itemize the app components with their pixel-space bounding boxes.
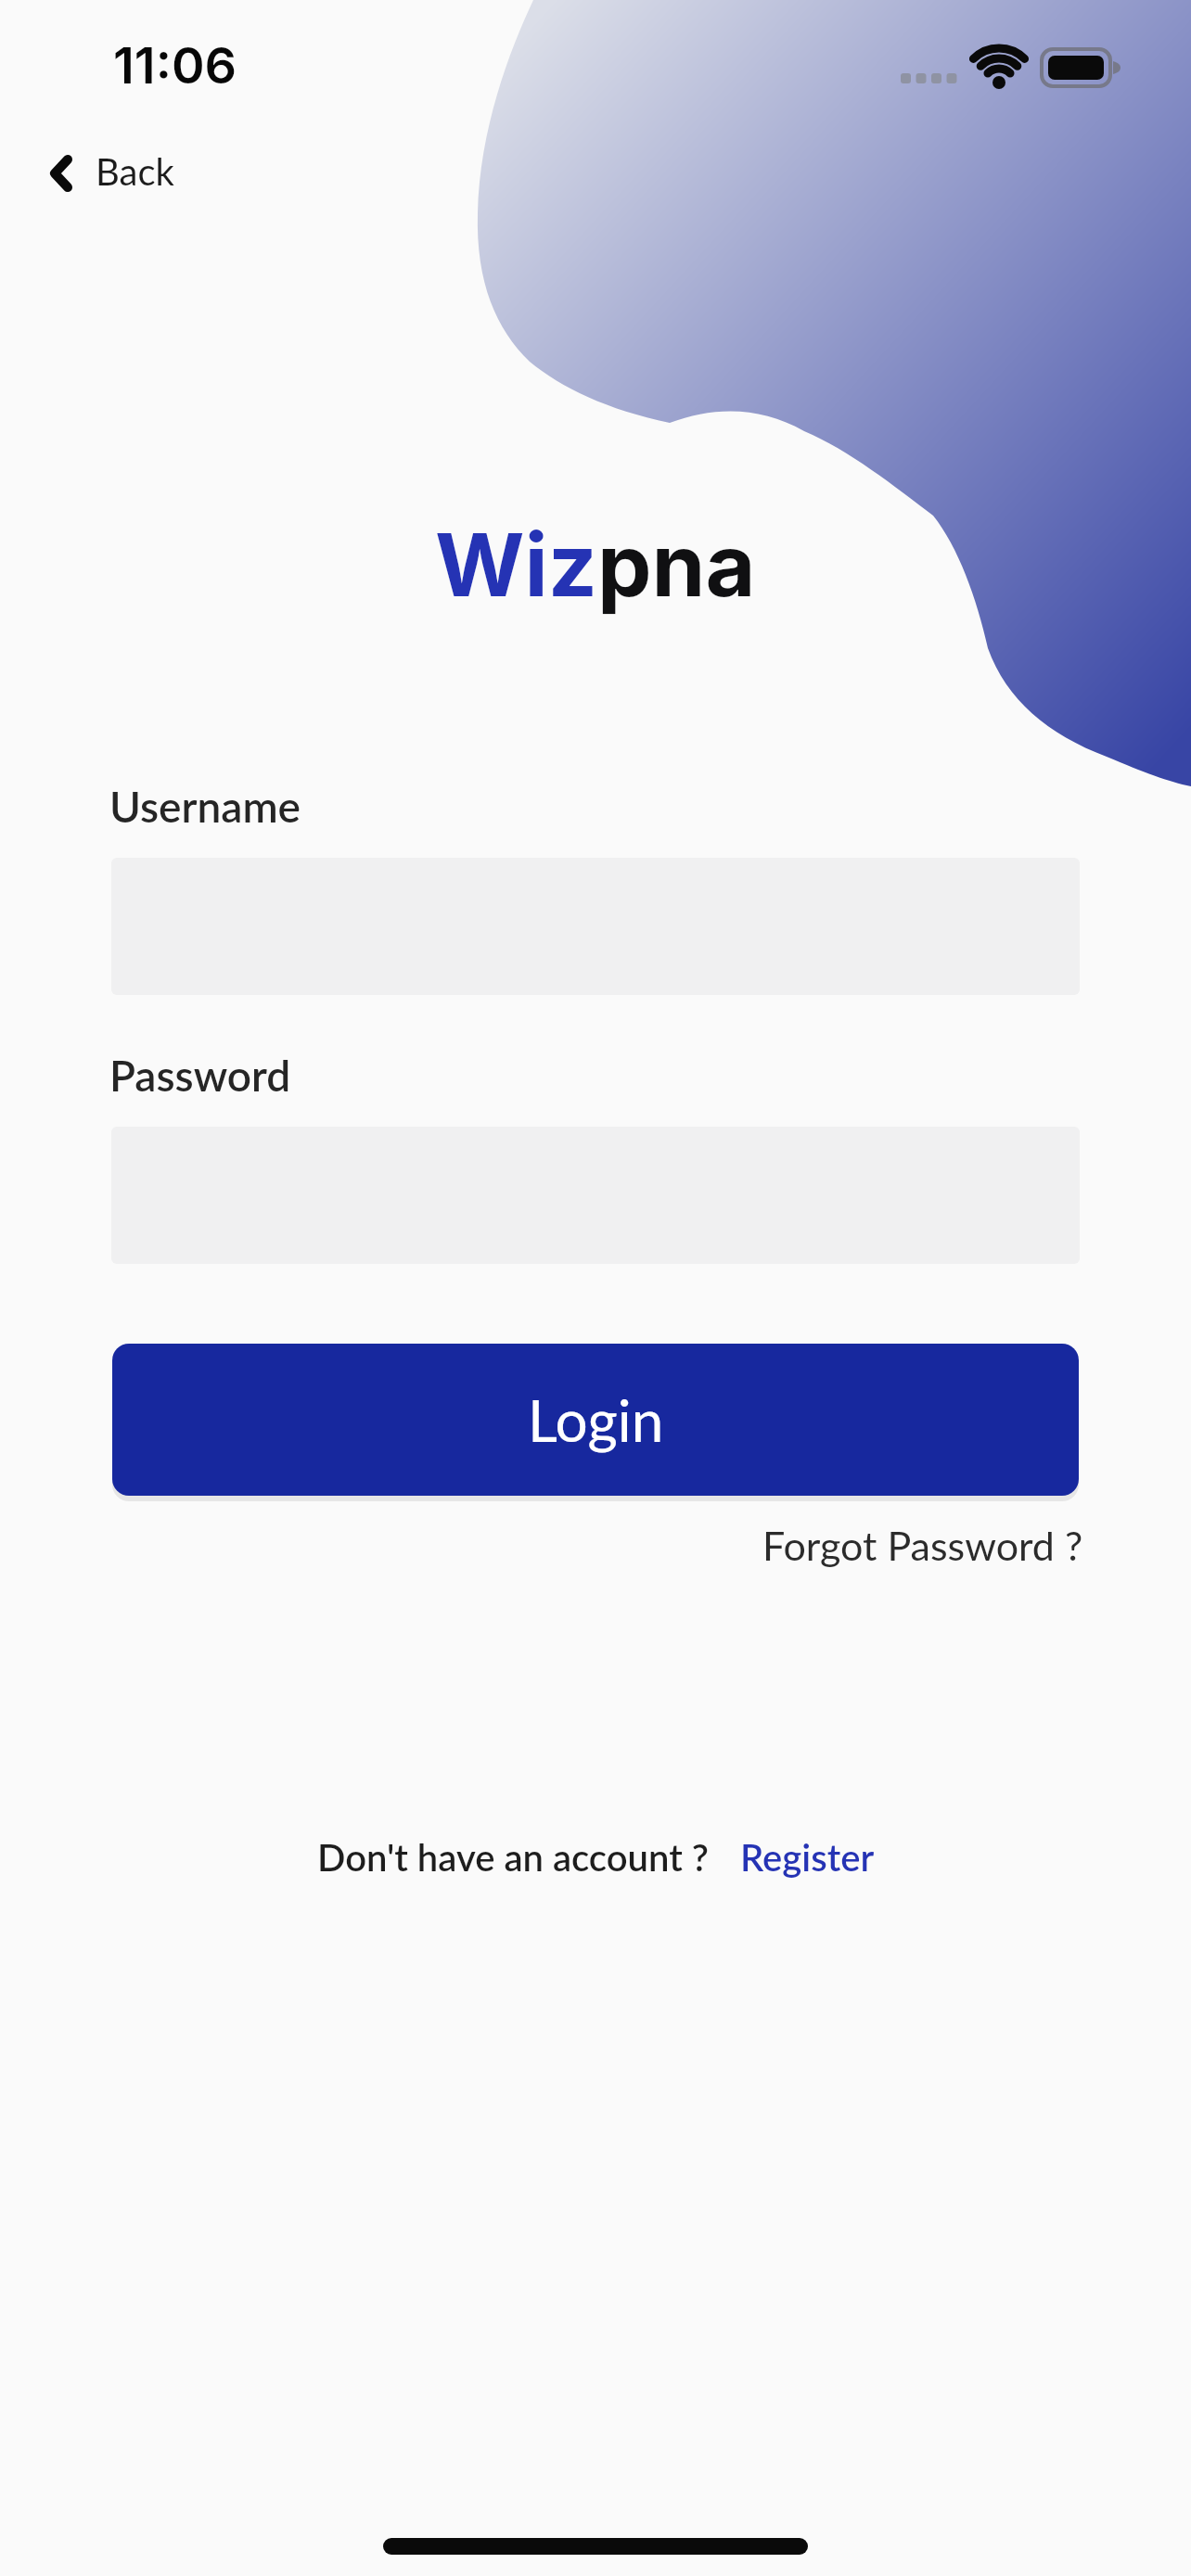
button[interactable]: Register: [740, 1835, 875, 1880]
staticText: 11:06: [113, 35, 237, 96]
staticText: Wizpna: [435, 513, 756, 618]
button[interactable]: Forgot Password ?: [762, 1522, 1083, 1570]
staticText: Back: [96, 149, 174, 194]
button[interactable]: Back: [39, 139, 206, 202]
staticText: Password: [109, 1050, 291, 1101]
staticText: Don't have an account ?: [317, 1835, 709, 1880]
staticText: Username: [109, 781, 301, 832]
button[interactable]: Login: [112, 1344, 1079, 1496]
staticText: Login: [528, 1385, 664, 1454]
